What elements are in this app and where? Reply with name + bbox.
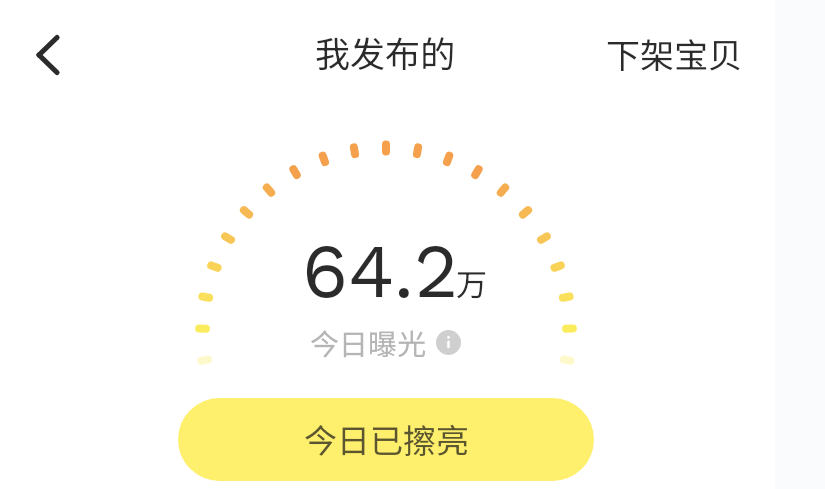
staticText: 64.2 bbox=[302, 226, 459, 315]
button[interactable]: 今日已擦亮 bbox=[178, 398, 594, 481]
button[interactable]: Back bbox=[18, 25, 78, 85]
button[interactable]: 下架宝贝 bbox=[594, 17, 754, 90]
staticText: 今日已擦亮 bbox=[304, 415, 469, 463]
staticText: 今日曝光 bbox=[310, 321, 427, 363]
button[interactable]: About today's exposure bbox=[436, 330, 461, 355]
staticText: 我发布的 bbox=[315, 26, 456, 77]
staticText: 万 bbox=[456, 260, 487, 305]
staticText: 下架宝贝 bbox=[606, 29, 742, 78]
